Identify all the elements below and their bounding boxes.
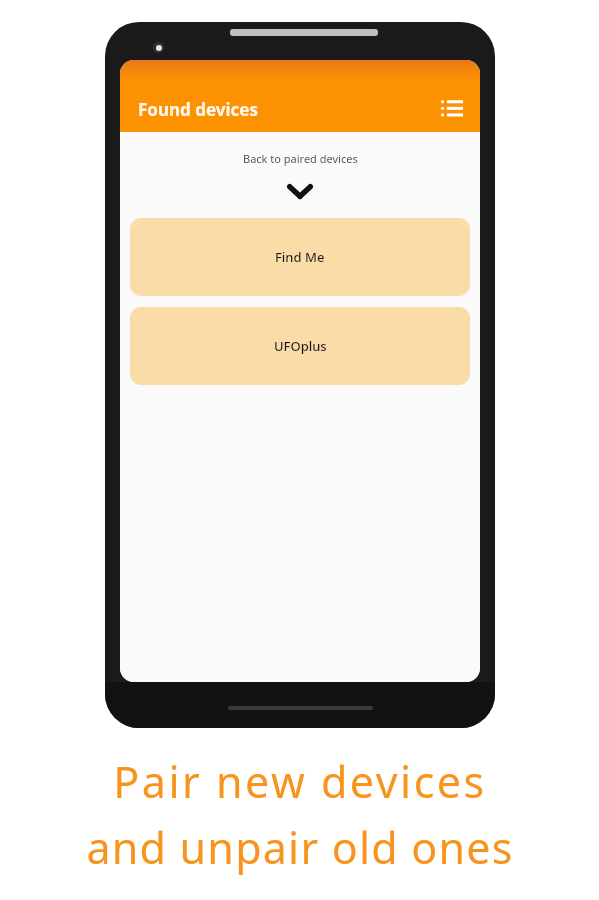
staticText: Find Me bbox=[275, 248, 325, 266]
staticText: and unpair old ones bbox=[86, 818, 514, 877]
staticText: Pair new devices bbox=[113, 752, 487, 811]
staticText: Found devices bbox=[138, 98, 259, 121]
button[interactable]: Back to paired devices bbox=[276, 178, 324, 204]
staticText: Back to paired devices bbox=[243, 151, 358, 166]
button[interactable]: Menu bbox=[432, 89, 472, 129]
button[interactable]: UFOplus bbox=[130, 307, 470, 385]
button[interactable]: Find Me bbox=[130, 218, 470, 296]
staticText: UFOplus bbox=[274, 337, 327, 355]
